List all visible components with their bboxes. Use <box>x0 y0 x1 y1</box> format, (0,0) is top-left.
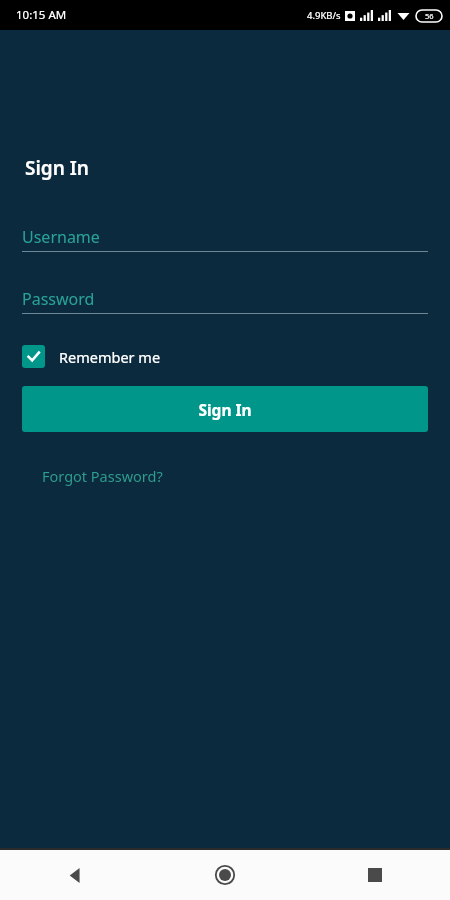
staticText: 4.9KB/s <box>307 9 341 22</box>
staticText: Sign In <box>25 155 89 181</box>
button[interactable]: Home <box>150 850 300 900</box>
staticText: Password <box>22 288 95 310</box>
button[interactable]: Forgot Password? <box>30 462 175 490</box>
staticText: Username <box>22 226 100 248</box>
button[interactable]: Sign In <box>22 386 428 432</box>
button[interactable]: Back <box>0 850 150 900</box>
button[interactable]: Remember me <box>22 343 169 370</box>
button[interactable]: Password <box>22 288 428 314</box>
staticText: Forgot Password? <box>42 466 163 486</box>
button[interactable]: Username <box>22 226 428 252</box>
staticText: 10:15 AM <box>16 7 67 23</box>
staticText: Sign In <box>198 399 252 420</box>
staticText: Remember me <box>59 347 161 367</box>
button[interactable]: Recent apps <box>300 850 450 900</box>
staticText: 56 <box>425 11 434 21</box>
